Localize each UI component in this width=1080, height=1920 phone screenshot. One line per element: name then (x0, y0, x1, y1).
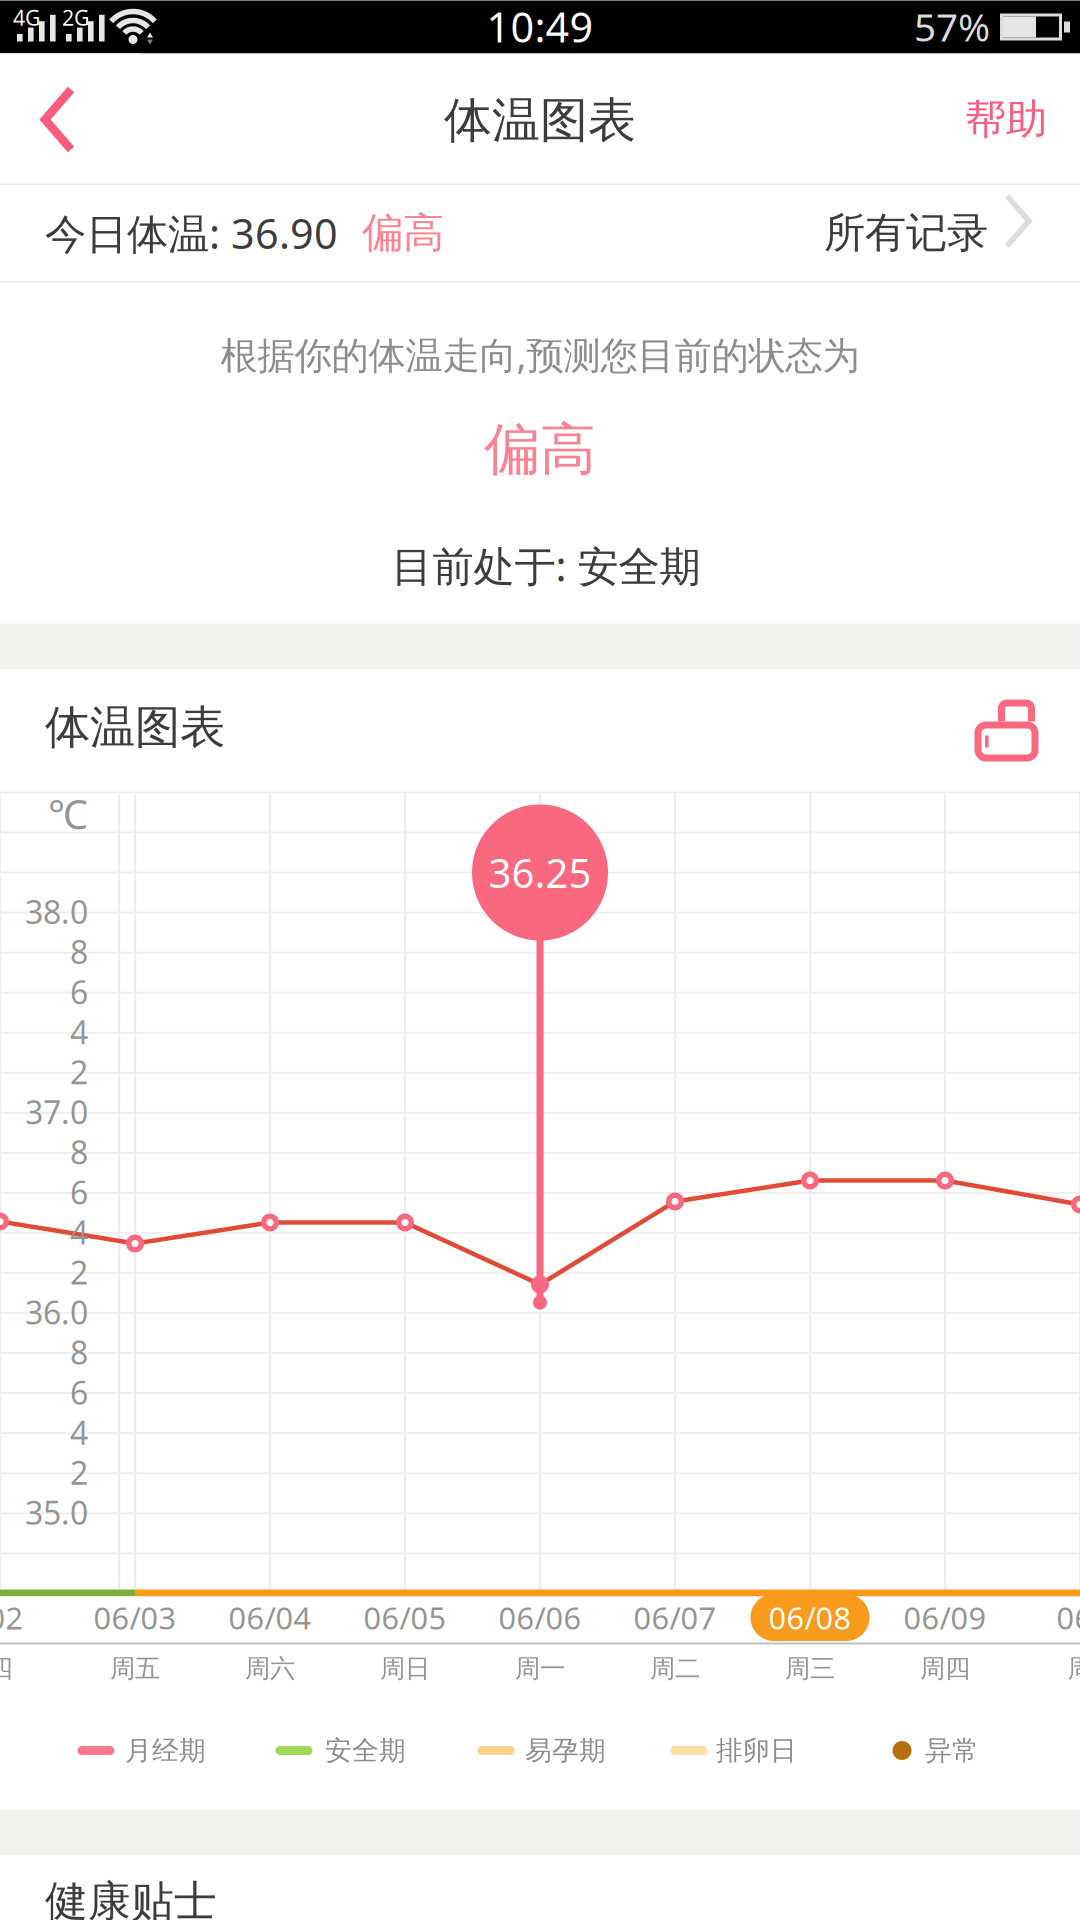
staticText: 06/ (1056, 1597, 1080, 1638)
staticText: 06/07 (633, 1597, 716, 1638)
staticText: 06/08 (768, 1597, 851, 1638)
staticText: 57% (914, 1, 990, 52)
staticText: 06/09 (903, 1597, 986, 1638)
staticText: ℃ (48, 787, 88, 840)
staticText: 体温图表 (45, 700, 225, 755)
staticText: 月经期 (125, 1734, 206, 1767)
staticText: 36.25 (488, 846, 591, 899)
staticText: 四 (0, 1653, 12, 1684)
button[interactable]: 今日体温: 36.90 (0, 185, 1080, 281)
staticText: 周 (1067, 1653, 1080, 1684)
staticText: 异常 (925, 1734, 979, 1767)
staticText: 4 (70, 1011, 88, 1053)
staticText: 偏高 (484, 415, 596, 484)
staticText: 4 (70, 1411, 88, 1454)
staticText: 周六 (245, 1653, 295, 1684)
staticText: 周日 (380, 1653, 430, 1684)
staticText: 6 (70, 1371, 88, 1413)
staticText: 周二 (650, 1653, 700, 1684)
staticText: 帮助 (965, 94, 1047, 145)
staticText: 周四 (920, 1653, 970, 1684)
staticText: 排卵日 (716, 1734, 797, 1767)
staticText: /02 (0, 1597, 23, 1638)
staticText: 35.0 (25, 1491, 88, 1534)
staticText: 36.0 (25, 1291, 88, 1333)
staticText: 周三 (785, 1653, 835, 1684)
staticText: 10:49 (486, 0, 593, 54)
staticText: 易孕期 (525, 1734, 606, 1767)
staticText: 4G (13, 3, 41, 32)
button[interactable]: 帮助 (926, 54, 1080, 184)
staticText: 8 (70, 930, 88, 973)
staticText: 体温图表 (444, 91, 636, 150)
staticText: 06/06 (498, 1597, 581, 1638)
staticText: 安全期 (325, 1734, 406, 1767)
staticText: 38.0 (25, 890, 88, 933)
staticText: 8 (70, 1331, 88, 1373)
staticText: 周一 (515, 1653, 565, 1684)
staticText: 今日体温: 36.90 (45, 206, 338, 260)
staticText: 偏高 (338, 208, 444, 258)
staticText: 2 (70, 1451, 88, 1494)
staticText: 06/03 (93, 1597, 176, 1638)
staticText: 06/05 (363, 1597, 446, 1638)
button[interactable]: Unlock chart (972, 696, 1038, 762)
staticText: 根据你的体温走向,预测您目前的状态为 (220, 330, 859, 379)
staticText: 目前处于: 安全期 (391, 538, 700, 593)
staticText: 06/04 (228, 1597, 311, 1638)
staticText: 8 (70, 1131, 88, 1173)
staticText: 2 (70, 1051, 88, 1093)
staticText: 所有记录 (824, 208, 988, 258)
button[interactable]: Back (0, 53, 140, 183)
staticText: 2G (62, 3, 90, 32)
staticText: 周五 (110, 1653, 160, 1684)
staticText: 6 (70, 1171, 88, 1213)
staticText: 2 (70, 1251, 88, 1293)
staticText: 4 (70, 1211, 88, 1253)
staticText: 6 (70, 970, 88, 1013)
staticText: 健康贴士 (45, 1875, 217, 1920)
staticText: 37.0 (25, 1091, 88, 1133)
